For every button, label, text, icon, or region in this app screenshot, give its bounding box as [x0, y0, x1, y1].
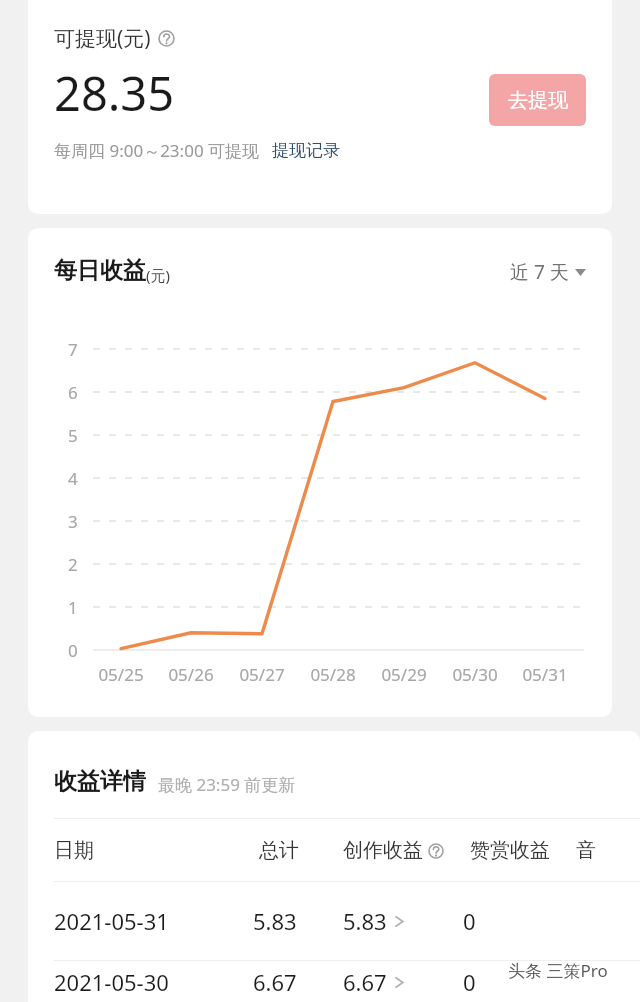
staticText: 2021-05-30: [54, 967, 169, 997]
staticText: 日期: [54, 838, 94, 863]
staticText: 创作收益: [343, 838, 423, 863]
staticText: 总计: [259, 838, 299, 863]
staticText: 2021-05-31: [54, 906, 169, 936]
staticText: 05/28: [310, 663, 356, 686]
staticText: 最晚 23:59 前更新: [158, 773, 296, 796]
button[interactable]: 提现记录: [272, 140, 340, 161]
staticText: 3: [68, 510, 78, 533]
staticText: 05/26: [168, 663, 214, 686]
staticText: 近 7 天: [510, 259, 569, 285]
staticText: 音: [576, 838, 596, 863]
staticText: 5.83: [343, 906, 387, 936]
staticText: 6.67: [253, 967, 297, 997]
staticText: 05/31: [522, 663, 568, 686]
staticText: 05/27: [239, 663, 285, 686]
staticText: 收益详情: [54, 767, 146, 796]
staticText: 4: [68, 467, 78, 490]
staticText: 每日收益: [54, 256, 146, 285]
staticText: 5.83: [253, 906, 297, 936]
staticText: (元): [146, 265, 171, 285]
staticText: 0: [463, 967, 476, 997]
staticText: 每周四 9:00～23:00 可提现: [54, 139, 260, 162]
staticText: 05/29: [381, 663, 427, 686]
staticText: 7: [68, 338, 78, 361]
staticText: 0: [68, 639, 78, 662]
staticText: 28.35: [54, 61, 175, 125]
staticText: 2: [68, 553, 78, 576]
staticText: 6: [68, 381, 78, 404]
button[interactable]: 2021-05-30: [28, 961, 640, 1002]
button[interactable]: 近 7 天: [510, 259, 586, 285]
button[interactable]: 说明: [158, 30, 175, 47]
button[interactable]: 去提现: [489, 74, 586, 126]
staticText: 去提现: [508, 88, 568, 113]
staticText: 6.67: [343, 967, 387, 997]
staticText: 05/25: [98, 663, 144, 686]
staticText: 5: [68, 424, 78, 447]
staticText: 赞赏收益: [470, 838, 550, 863]
staticText: 0: [463, 906, 476, 936]
staticText: 可提现(元): [54, 24, 151, 53]
button[interactable]: 2021-05-31: [28, 882, 640, 960]
staticText: 05/30: [452, 663, 498, 686]
staticText: 头条 三策Pro: [508, 959, 608, 982]
staticText: 1: [68, 596, 78, 619]
staticText: 提现记录: [272, 140, 340, 161]
